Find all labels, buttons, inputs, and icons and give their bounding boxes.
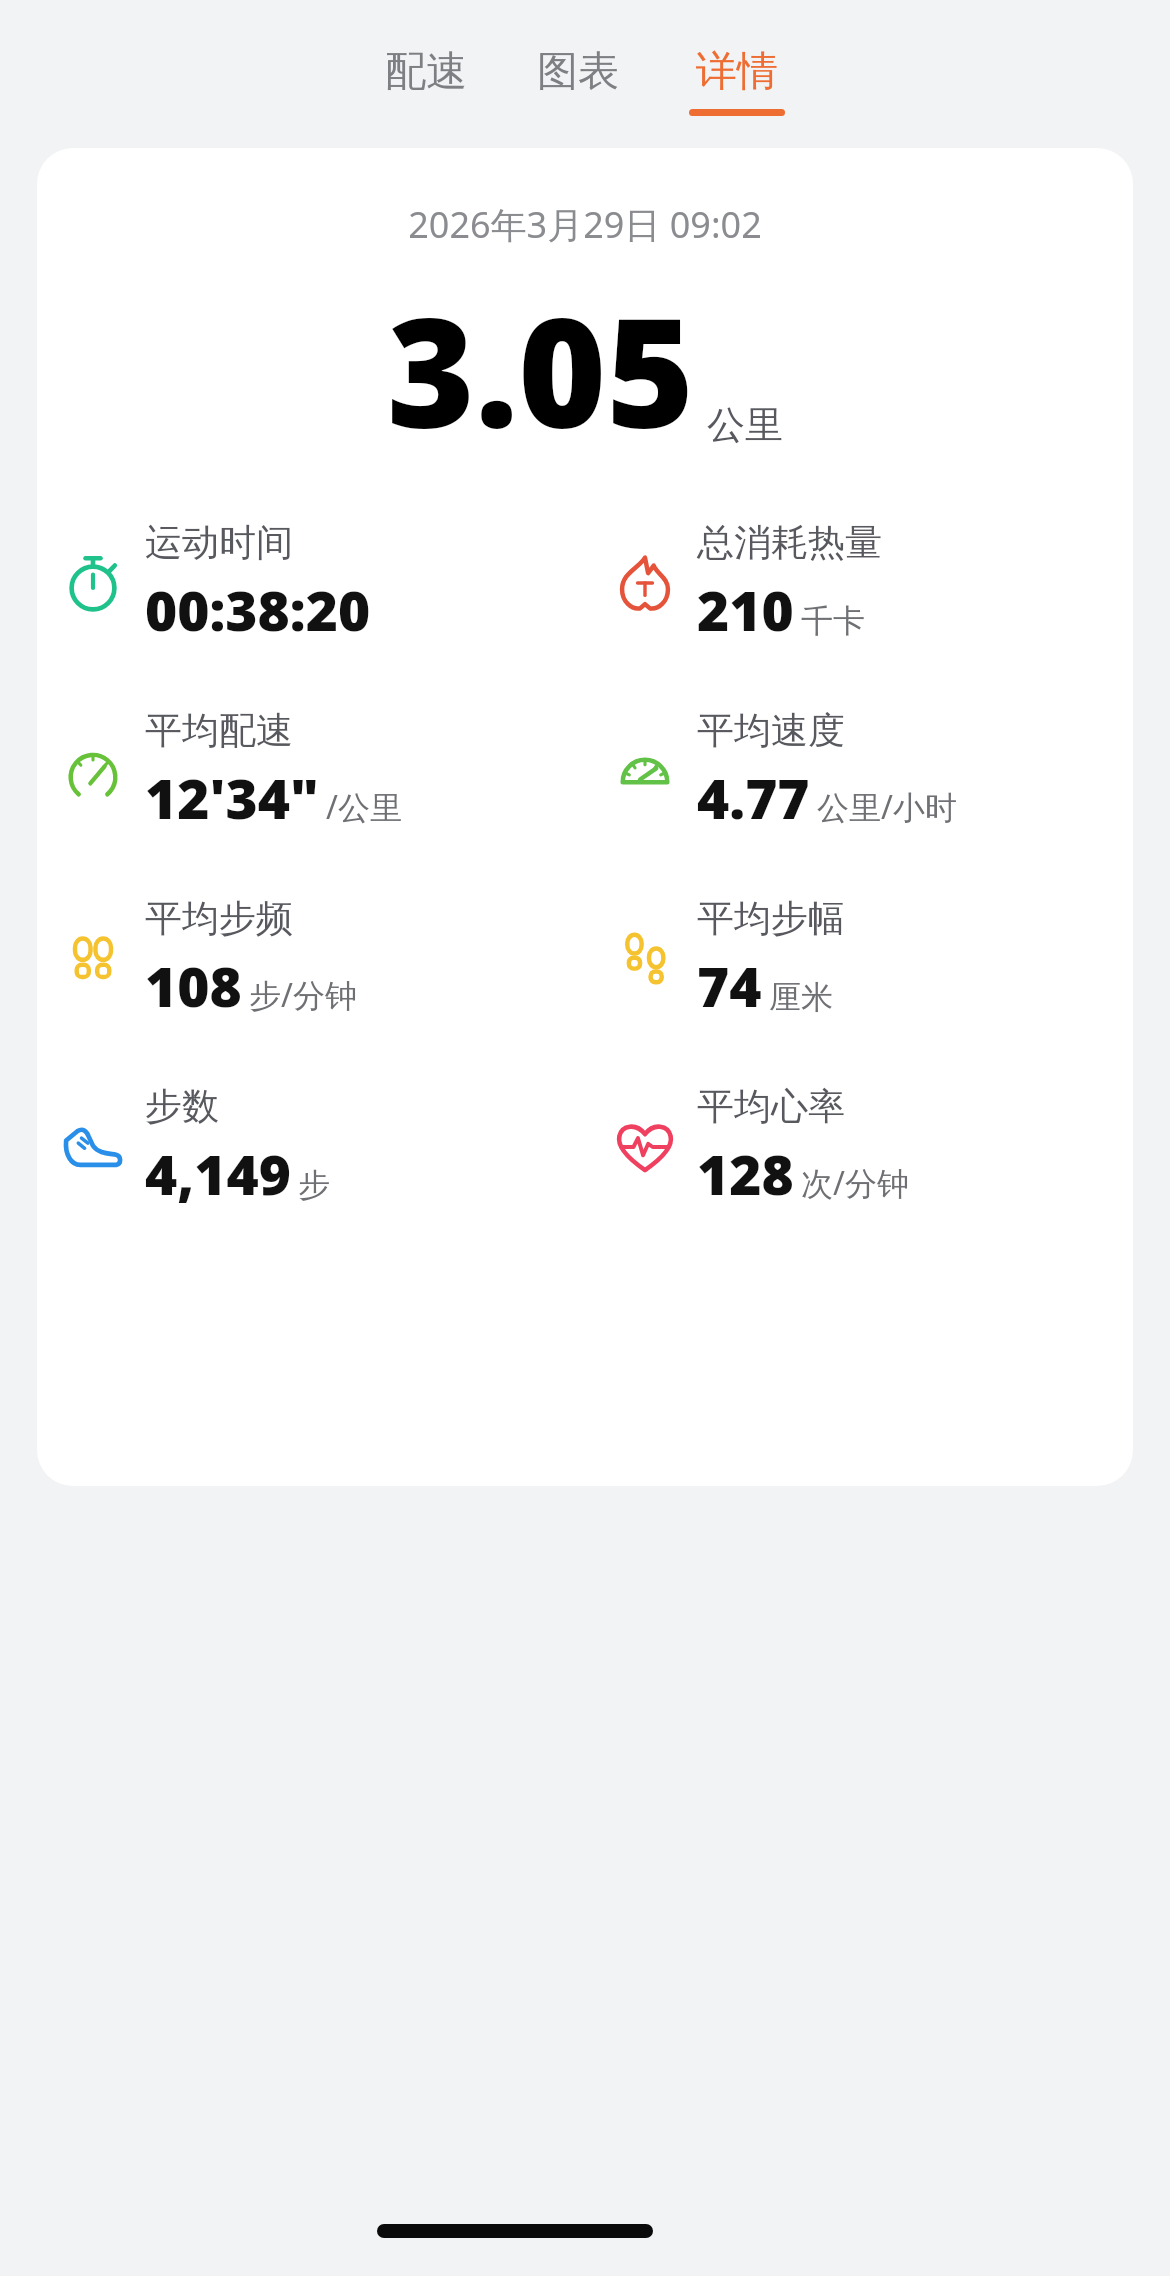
staticText: 公里	[707, 401, 783, 449]
staticText: 配速	[385, 46, 467, 98]
staticText: /公里	[326, 785, 402, 829]
other: 平均速度	[609, 735, 681, 807]
staticText: 平均步幅	[697, 895, 845, 942]
button[interactable]: 配速	[379, 46, 473, 116]
staticText: 210	[697, 572, 794, 647]
staticText: 总消耗热量	[697, 519, 882, 566]
staticText: 128	[697, 1136, 794, 1211]
staticText: 74	[697, 948, 762, 1023]
staticText: 4,149	[145, 1136, 291, 1211]
staticText: 详情	[696, 46, 778, 98]
other: 平均心率	[609, 1111, 681, 1183]
staticText: 3.05	[387, 267, 695, 471]
button[interactable]: 图表	[531, 46, 625, 116]
staticText: 平均配速	[145, 707, 293, 754]
other: 平均配速	[57, 735, 129, 807]
staticText: 12'34"	[145, 760, 319, 835]
staticText: 108	[145, 948, 242, 1023]
staticText: 步数	[145, 1083, 219, 1130]
button[interactable]: 平均速度	[585, 707, 1133, 835]
button[interactable]: 步数	[37, 1083, 585, 1211]
button[interactable]: 平均步频	[37, 895, 585, 1023]
staticText: 步	[298, 1165, 330, 1205]
staticText: 厘米	[769, 977, 833, 1017]
other: 平均步幅	[609, 923, 681, 995]
button[interactable]: 平均配速	[37, 707, 585, 835]
other: 平均步频	[57, 923, 129, 995]
other: 总消耗热量	[609, 547, 681, 619]
button[interactable]: 平均心率	[585, 1083, 1133, 1211]
button[interactable]: 详情	[683, 46, 791, 116]
staticText: 平均速度	[697, 707, 845, 754]
staticText: 00:38:20	[145, 572, 371, 647]
staticText: 平均步频	[145, 895, 293, 942]
staticText: 步/分钟	[249, 973, 357, 1017]
button[interactable]: 平均步幅	[585, 895, 1133, 1023]
staticText: 公里/小时	[817, 785, 957, 829]
staticText: 2026年3月29日 09:02	[37, 200, 1133, 249]
other: 步数	[57, 1111, 129, 1183]
staticText: 运动时间	[145, 519, 293, 566]
staticText: 图表	[537, 46, 619, 98]
staticText: 次/分钟	[801, 1161, 909, 1205]
staticText: 千卡	[801, 601, 865, 641]
button[interactable]: 运动时间	[37, 519, 585, 647]
staticText: 4.77	[697, 760, 810, 835]
button[interactable]: 总消耗热量	[585, 519, 1133, 647]
other: 运动时间	[57, 547, 129, 619]
staticText: 平均心率	[697, 1083, 845, 1130]
